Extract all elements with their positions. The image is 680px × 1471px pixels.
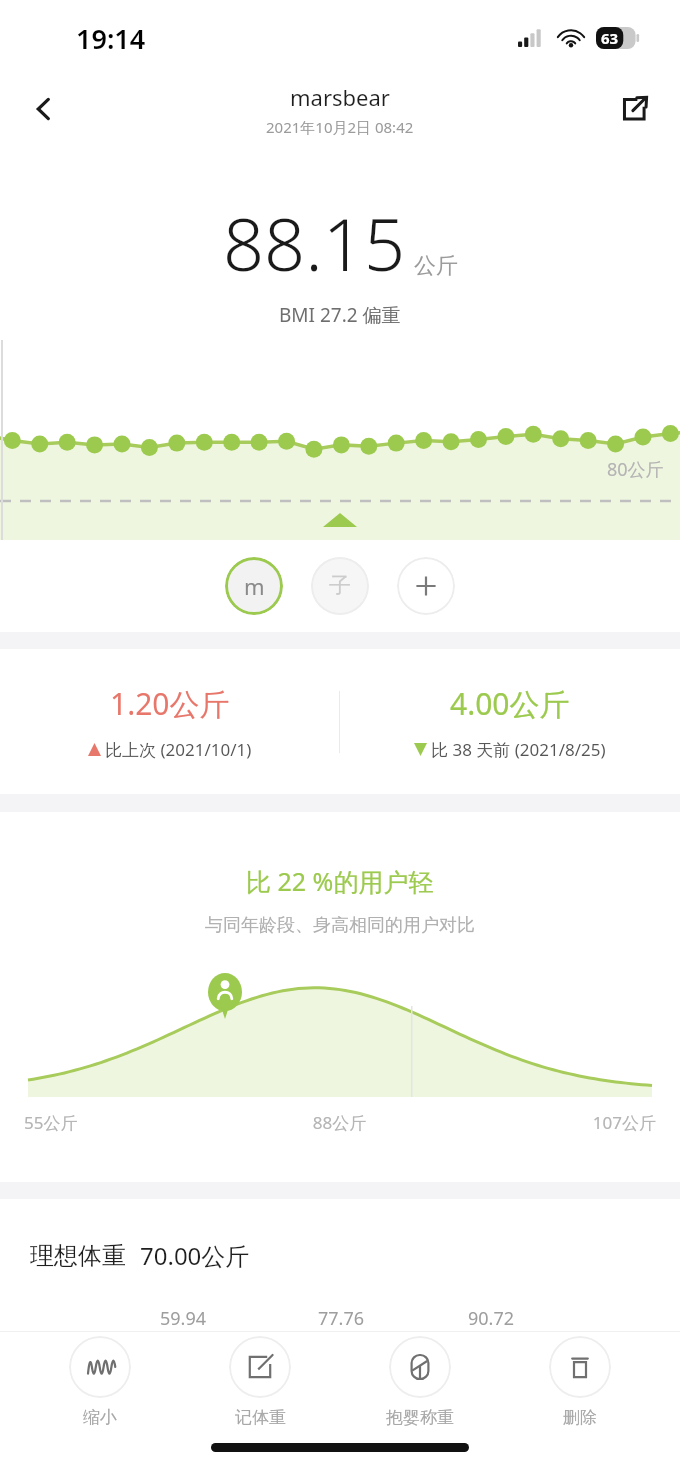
staticText: 63 (601, 28, 619, 48)
staticText: 70.00公斤 (140, 1239, 250, 1272)
button[interactable]: 缩小 (40, 1336, 160, 1428)
staticText: 88公斤 (234, 1111, 445, 1134)
staticText: BMI 27.2 偏重 (279, 302, 401, 328)
button[interactable]: Add user (397, 557, 455, 615)
staticText: 子 (329, 572, 351, 600)
button[interactable]: 子 (311, 557, 369, 615)
staticText: marsbear (290, 82, 390, 112)
staticText: 抱婴称重 (386, 1407, 454, 1428)
staticText: 90.72 (468, 1306, 515, 1331)
staticText: 2021年10月2日 08:42 (266, 117, 414, 137)
staticText: 公斤 (414, 252, 458, 280)
staticText: 比 22 %的用户轻 (246, 864, 434, 898)
button[interactable]: 抱婴称重 (360, 1336, 480, 1428)
staticText: 19:14 (76, 20, 146, 57)
staticText: 删除 (563, 1407, 597, 1428)
staticText: 77.76 (318, 1306, 365, 1331)
staticText: 80公斤 (607, 457, 664, 482)
button[interactable]: Share (606, 81, 662, 137)
staticText: 比 38 天前 (2021/8/25) (431, 738, 606, 761)
button[interactable]: 1.20公斤 (0, 683, 339, 761)
staticText: 1.20公斤 (110, 683, 230, 724)
staticText: 59.94 (160, 1306, 207, 1331)
staticText: 与同年龄段、身高相同的用户对比 (205, 914, 475, 937)
button[interactable]: 理想体重 (0, 1199, 680, 1331)
staticText: 88.15 (223, 194, 406, 292)
button[interactable]: m (225, 557, 283, 615)
button[interactable]: Back (16, 81, 72, 137)
staticText: 比上次 (2021/10/1) (105, 738, 252, 761)
staticText: 4.00公斤 (450, 683, 570, 724)
staticText: 缩小 (83, 1407, 117, 1428)
staticText: 107公斤 (445, 1111, 656, 1134)
button[interactable]: 记体重 (200, 1336, 320, 1428)
staticText: 55公斤 (24, 1111, 234, 1134)
staticText: 理想体重 (30, 1241, 126, 1271)
staticText: m (244, 571, 265, 601)
button[interactable]: 4.00公斤 (340, 683, 680, 761)
staticText: 记体重 (235, 1407, 286, 1428)
button[interactable]: 删除 (520, 1336, 640, 1428)
